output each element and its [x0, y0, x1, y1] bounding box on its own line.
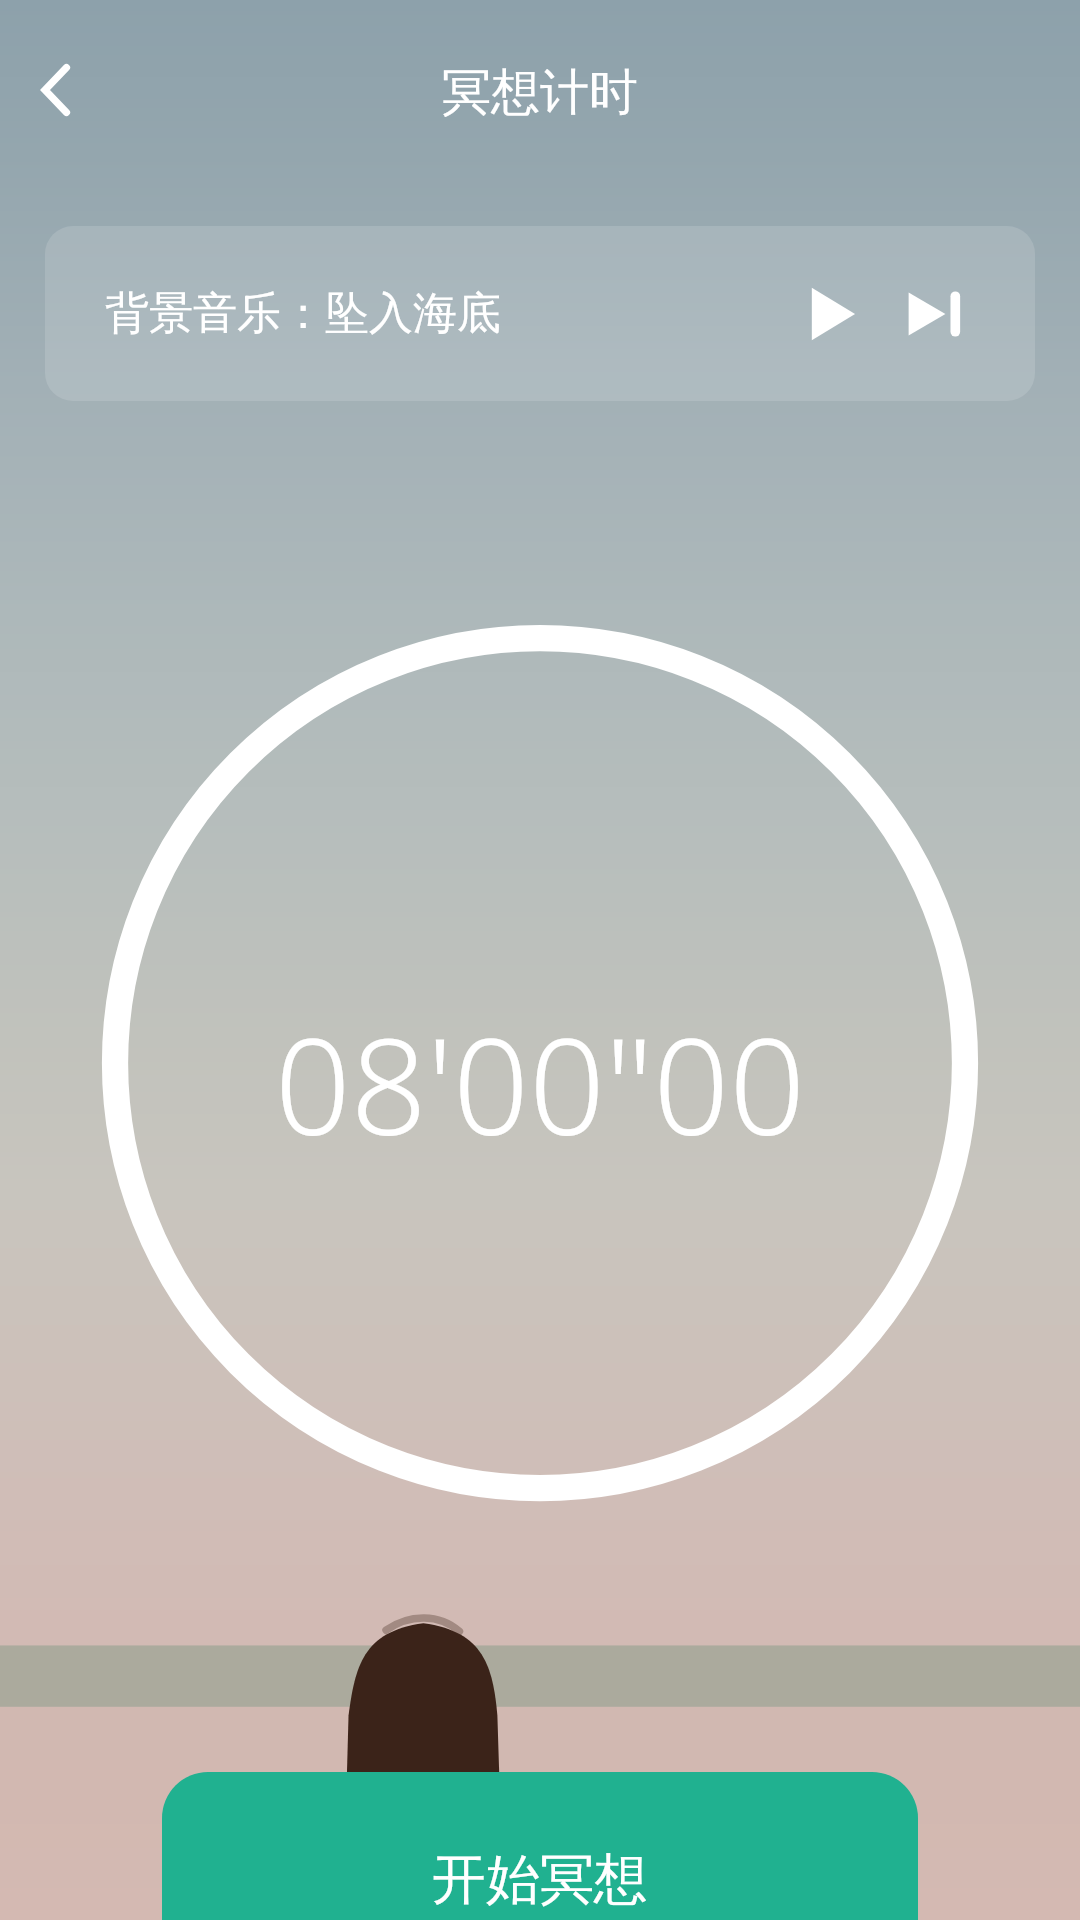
staticText: 08'00"00 — [0, 993, 1080, 1920]
staticText: 开始冥想 — [432, 1846, 648, 1914]
button[interactable]: 背景音乐：坠入海底 — [45, 226, 1035, 401]
button[interactable]: Back — [5, 40, 105, 140]
staticText: 背景音乐：坠入海底 — [105, 286, 501, 341]
button[interactable]: 开始冥想 — [162, 1772, 918, 1920]
staticText: 冥想计时 — [0, 62, 1080, 1920]
button[interactable]: Play — [781, 268, 873, 360]
button[interactable]: Next track — [887, 268, 979, 360]
